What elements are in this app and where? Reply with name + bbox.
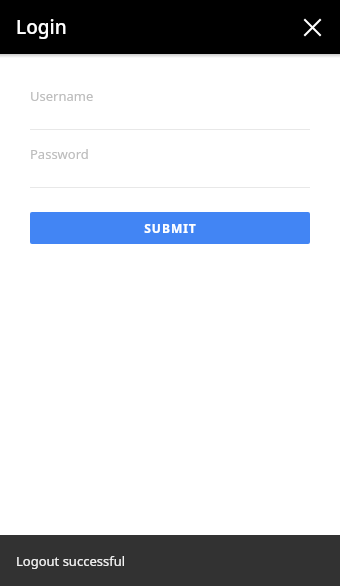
staticText: Username [30, 87, 94, 105]
button[interactable]: Logout successful [0, 535, 340, 586]
button[interactable]: Password [30, 145, 310, 188]
staticText: Login [16, 14, 67, 40]
button[interactable]: Username [30, 87, 310, 130]
staticText: SUBMIT [144, 220, 197, 236]
button[interactable]: SUBMIT [30, 212, 310, 244]
staticText: Logout successful [16, 552, 126, 570]
button[interactable]: Close [292, 7, 332, 47]
staticText: Password [30, 145, 89, 163]
